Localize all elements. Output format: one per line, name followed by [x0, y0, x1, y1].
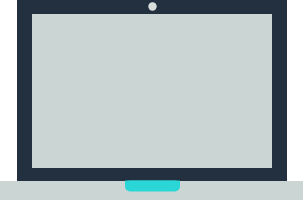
button[interactable]: Laptop computer illustration — [0, 0, 303, 200]
